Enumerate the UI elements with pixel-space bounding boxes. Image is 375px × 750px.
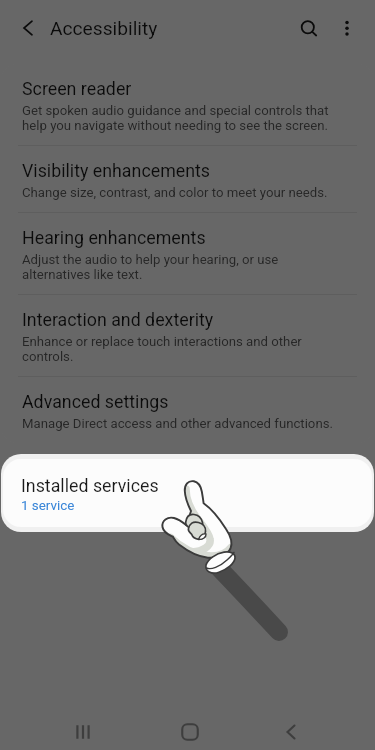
- button[interactable]: Hearing enhancements: [1, 212, 374, 294]
- button[interactable]: Back: [8, 8, 48, 48]
- staticText: Visibility enhancements: [22, 160, 211, 181]
- staticText: Manage Direct access and other advanced …: [22, 416, 333, 431]
- staticText: Get spoken audio guidance and special co…: [22, 103, 346, 133]
- button[interactable]: Home: [166, 708, 214, 750]
- staticText: Screen reader: [22, 78, 132, 99]
- button[interactable]: Visibility enhancements: [1, 145, 374, 212]
- button[interactable]: Search: [289, 6, 329, 46]
- staticText: Installed services: [21, 475, 159, 496]
- staticText: Accessibility: [50, 17, 158, 40]
- staticText: Hearing enhancements: [22, 227, 206, 248]
- staticText: 1 service: [21, 498, 75, 514]
- button[interactable]: Advanced settings: [1, 376, 374, 443]
- button[interactable]: Recents: [59, 708, 107, 750]
- staticText: Enhance or replace touch interactions an…: [22, 334, 346, 364]
- button[interactable]: Interaction and dexterity: [1, 294, 374, 376]
- button[interactable]: Back: [267, 708, 315, 750]
- staticText: Adjust the audio to help your hearing, o…: [22, 252, 346, 282]
- staticText: Change size, contrast, and color to meet…: [22, 185, 328, 200]
- button[interactable]: Screen reader: [1, 64, 374, 145]
- staticText: Advanced settings: [22, 391, 169, 412]
- staticText: Interaction and dexterity: [22, 309, 214, 330]
- button[interactable]: More options: [319, 6, 359, 46]
- button[interactable]: Installed services: [3, 459, 372, 527]
